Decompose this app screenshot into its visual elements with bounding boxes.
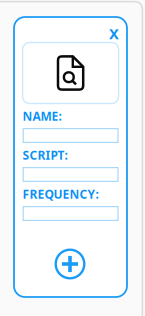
staticText: FREQUENCY: (23, 186, 99, 202)
button[interactable]: Choose document (23, 42, 119, 103)
staticText: NAME: (23, 108, 62, 124)
button[interactable]: Add item (54, 248, 85, 279)
staticText: SCRIPT: (23, 147, 68, 163)
staticText: X (109, 24, 119, 43)
button[interactable]: Close (104, 23, 124, 43)
